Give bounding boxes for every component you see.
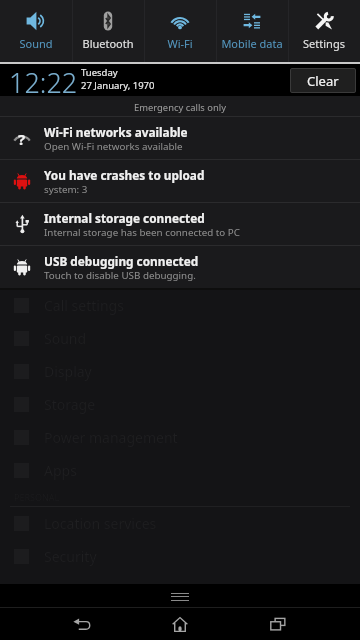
button[interactable]: Recent apps xyxy=(229,608,327,640)
staticText: Open Wi-Fi networks available xyxy=(44,140,183,153)
staticText: Clear xyxy=(307,72,339,90)
button[interactable]: Clear xyxy=(290,68,356,93)
button[interactable]: Internal storage connected xyxy=(0,203,360,245)
staticText: Touch to disable USB debugging. xyxy=(44,269,196,282)
staticText: Mobile data xyxy=(221,36,283,51)
staticText: Wi-Fi networks available xyxy=(44,124,188,140)
button[interactable]: Mobile data xyxy=(216,0,288,62)
button[interactable]: Settings xyxy=(288,0,360,62)
staticText: 27 January, 1970 xyxy=(81,79,155,92)
button[interactable]: You have crashes to upload xyxy=(0,160,360,202)
button[interactable]: Sound xyxy=(0,0,72,62)
staticText: Sound xyxy=(19,36,53,51)
button[interactable]: Back xyxy=(33,608,131,640)
button[interactable]: Bluetooth xyxy=(72,0,144,62)
staticText: Internal storage connected xyxy=(44,210,205,226)
staticText: ? xyxy=(18,129,26,149)
button[interactable]: Home xyxy=(131,608,229,640)
staticText: You have crashes to upload xyxy=(44,167,205,183)
staticText: Wi-Fi xyxy=(167,36,193,51)
staticText: Settings xyxy=(303,36,345,51)
button[interactable]: USB debugging connected xyxy=(0,246,360,288)
staticText: 12:22 xyxy=(9,64,78,96)
staticText: Internal storage has been connected to P… xyxy=(44,226,240,239)
button[interactable]: Wi-Fi xyxy=(144,0,216,62)
staticText: Emergency calls only xyxy=(134,101,226,114)
staticText: Tuesday xyxy=(81,66,118,79)
staticText: Bluetooth xyxy=(82,36,134,51)
button[interactable]: ? xyxy=(0,117,360,159)
staticText: USB debugging connected xyxy=(44,253,199,269)
staticText: system: 3 xyxy=(44,183,88,196)
